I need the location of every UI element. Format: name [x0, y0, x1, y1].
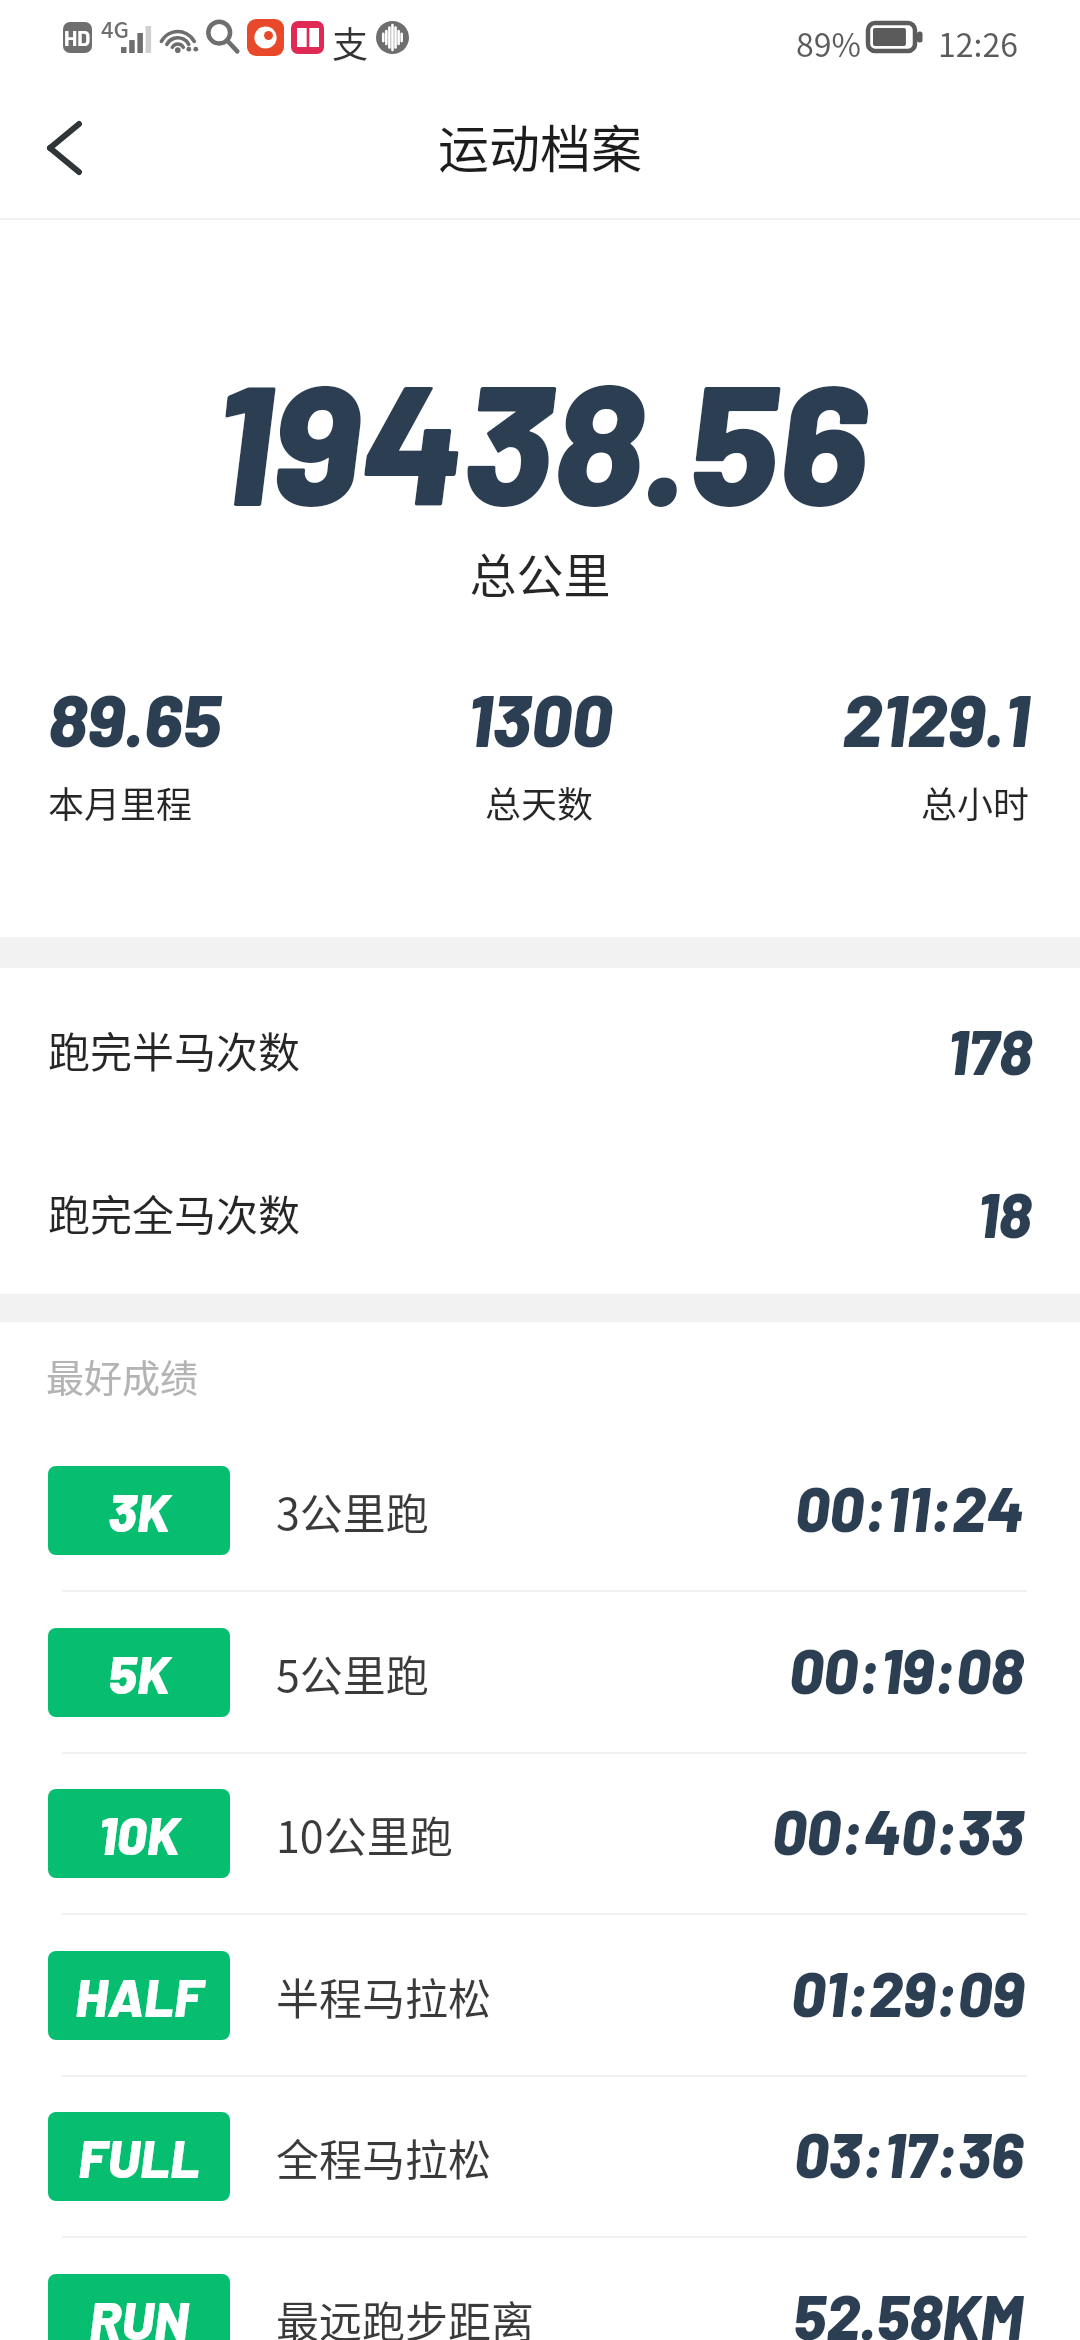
staticText: 全程马拉松 [276, 2126, 491, 2188]
staticText: 3公里跑 [276, 1480, 429, 1542]
staticText: 5公里跑 [276, 1642, 429, 1704]
staticText: FULL [78, 2124, 200, 2189]
staticText: 运动档案 [438, 109, 643, 183]
button[interactable]: RUN [0, 2237, 1080, 2340]
staticText: 10K [98, 1801, 180, 1866]
staticText: 18 [977, 1176, 1032, 1250]
staticText: 最好成绩 [46, 1348, 199, 1403]
staticText: 5K [108, 1640, 170, 1705]
staticText: 00:40:33 [772, 1793, 1024, 1867]
staticText: 支 [332, 16, 369, 68]
staticText: 00:11:24 [795, 1470, 1024, 1544]
staticText: HD [64, 25, 91, 50]
staticText: 01:29:09 [791, 1955, 1024, 2029]
staticText: 4G [101, 12, 129, 44]
staticText: 89.65 [48, 674, 222, 762]
button[interactable]: 3K [0, 1429, 1080, 1592]
staticText: 2129.1 [842, 674, 1030, 762]
staticText: HALF [75, 1963, 204, 2028]
staticText: 10公里跑 [276, 1803, 453, 1865]
staticText: 52.58KM [793, 2278, 1024, 2340]
staticText: 19438.56 [0, 336, 1080, 540]
staticText: 跑完半马次数 [48, 1019, 301, 1080]
button[interactable]: FULL [0, 2075, 1080, 2238]
button[interactable]: HALF [0, 1914, 1080, 2077]
staticText: 1300 [467, 674, 612, 762]
staticText: 半程马拉松 [276, 1965, 491, 2027]
staticText: 总小时 [921, 776, 1030, 828]
staticText: 178 [947, 1013, 1032, 1087]
staticText: 3K [108, 1478, 170, 1543]
staticText: 总天数 [485, 776, 594, 828]
staticText: 89% [796, 20, 861, 66]
button[interactable]: 跑完全马次数 [0, 1131, 1080, 1294]
staticText: 总公里 [0, 538, 1080, 606]
staticText: 00:19:08 [789, 1632, 1024, 1706]
button[interactable]: 10K [0, 1752, 1080, 1915]
staticText: 跑完全马次数 [48, 1182, 301, 1243]
button[interactable]: 跑完半马次数 [0, 968, 1080, 1131]
staticText: 本月里程 [48, 776, 193, 828]
staticText: RUN [89, 2286, 189, 2340]
staticText: 12:26 [938, 20, 1018, 66]
button[interactable]: 5K [0, 1591, 1080, 1754]
staticText: 03:17:36 [794, 2116, 1024, 2190]
button[interactable]: Back [22, 110, 108, 196]
staticText: 最远跑步距离 [276, 2288, 534, 2340]
